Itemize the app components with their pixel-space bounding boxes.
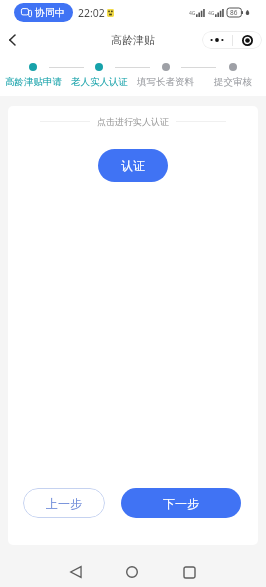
button[interactable]: Back — [60, 556, 92, 587]
staticText: 高龄津贴 — [111, 33, 155, 47]
button[interactable]: Recent apps — [173, 556, 205, 587]
staticText: 协同中 — [35, 6, 65, 19]
staticText: 填写长者资料 — [137, 76, 194, 88]
button[interactable]: 填写长者资料 — [132, 54, 199, 96]
staticText: 提交审核 — [214, 76, 252, 88]
button[interactable]: More options — [202, 31, 232, 49]
button[interactable]: 认证 — [98, 149, 168, 182]
staticText: 高龄津贴申请 — [5, 76, 62, 88]
staticText: 86 — [230, 8, 238, 17]
button[interactable]: 提交审核 — [199, 54, 266, 96]
button[interactable]: Close mini program — [233, 31, 262, 49]
staticText: 上一步 — [46, 496, 82, 511]
staticText: 认证 — [121, 158, 145, 173]
staticText: 22:02 — [78, 6, 105, 20]
button[interactable]: 老人实人认证 — [66, 54, 132, 96]
staticText: 点击进行实人认证 — [97, 116, 169, 127]
staticText: 4G — [208, 10, 215, 17]
staticText: 4G — [189, 10, 196, 17]
button[interactable]: 下一步 — [121, 488, 241, 518]
button[interactable]: 高龄津贴申请 — [0, 54, 66, 96]
button[interactable]: Home — [116, 556, 148, 587]
staticText: 老人实人认证 — [71, 76, 128, 88]
button[interactable]: 上一步 — [23, 488, 105, 518]
staticText: 下一步 — [163, 496, 199, 511]
button[interactable]: Back — [1, 29, 23, 51]
